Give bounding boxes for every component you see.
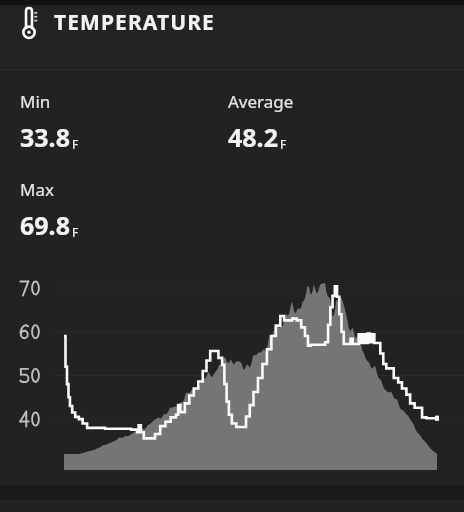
other: Temperature (20, 5, 38, 39)
staticText: F (72, 136, 79, 152)
button[interactable]: Max (20, 178, 228, 242)
staticText: 48.2 (228, 120, 278, 154)
staticText: 69.8 (20, 208, 70, 242)
staticText: F (280, 136, 287, 152)
staticText: 33.8 (20, 120, 70, 154)
button[interactable]: Temperature (0, 5, 464, 69)
staticText: TEMPERATURE (54, 8, 215, 37)
staticText: Average (228, 90, 294, 113)
staticText: Max (20, 178, 54, 201)
staticText: F (72, 224, 79, 240)
button[interactable]: Min (20, 90, 228, 154)
staticText: Min (20, 90, 51, 113)
button[interactable] (0, 268, 464, 485)
button[interactable]: Average (228, 90, 428, 154)
